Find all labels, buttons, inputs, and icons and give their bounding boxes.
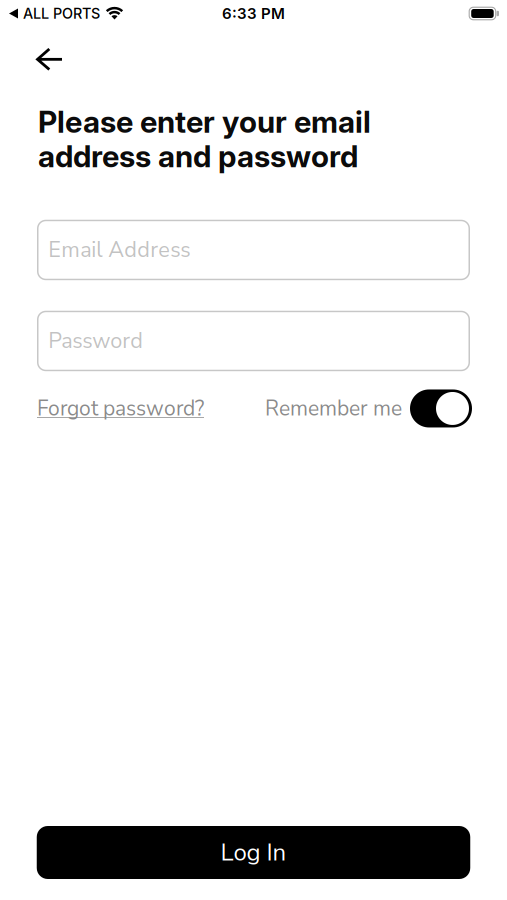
staticText: ALL PORTS xyxy=(23,5,100,22)
staticText: Forgot password? xyxy=(37,394,204,423)
staticText: Remember me xyxy=(265,394,402,423)
button[interactable]: Email Address xyxy=(38,220,469,279)
button[interactable]: Log In xyxy=(37,826,470,879)
staticText: Password xyxy=(48,326,143,356)
button[interactable]: Password xyxy=(38,311,469,370)
staticText: Log In xyxy=(220,836,286,869)
button[interactable]: Back xyxy=(37,49,62,69)
staticText: Please enter your email address and pass… xyxy=(38,104,371,173)
button[interactable]: Forgot password? xyxy=(37,394,204,423)
staticText: 6:33 PM xyxy=(222,4,285,23)
button[interactable]: Remember me xyxy=(410,389,472,427)
staticText: Email Address xyxy=(48,235,190,265)
